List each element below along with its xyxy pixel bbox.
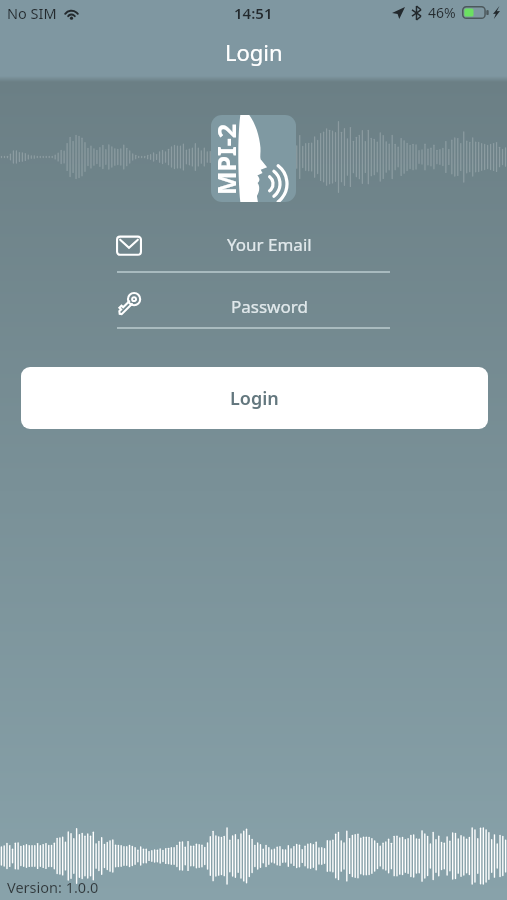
staticText: Login bbox=[230, 386, 279, 411]
staticText: No SIM bbox=[7, 3, 57, 23]
button[interactable]: Your Email bbox=[117, 227, 390, 271]
staticText: 46% bbox=[428, 3, 456, 22]
staticText: Password bbox=[231, 295, 308, 318]
staticText: MPI-2 bbox=[211, 123, 239, 195]
staticText: Login bbox=[225, 37, 283, 67]
button[interactable]: Password bbox=[117, 283, 390, 327]
staticText: Your Email bbox=[227, 233, 312, 256]
button[interactable]: Login bbox=[21, 367, 488, 429]
staticText: 14:51 bbox=[234, 3, 273, 23]
staticText: Version: 1.0.0 bbox=[7, 877, 99, 897]
